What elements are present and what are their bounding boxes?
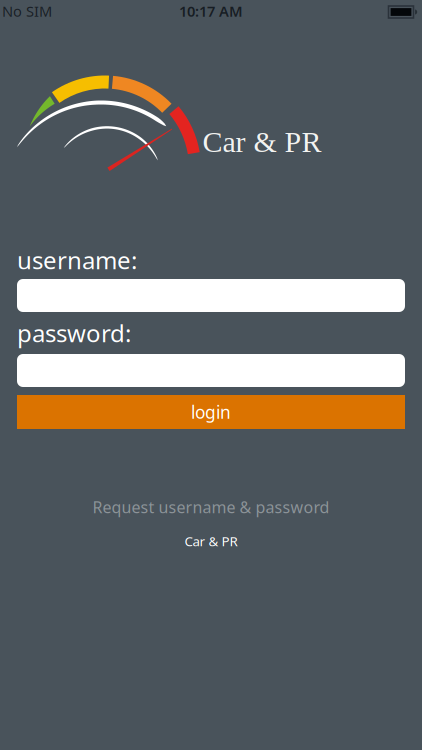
staticText: Car & PR [202, 125, 321, 159]
button[interactable]: password [17, 354, 405, 387]
button[interactable]: login [17, 395, 405, 429]
staticText: Car & PR [184, 532, 237, 550]
staticText: password: [17, 317, 131, 349]
staticText: username: [17, 244, 137, 276]
button[interactable]: username [17, 279, 405, 312]
staticText: Request username & password [92, 496, 329, 518]
staticText: No SIM [2, 1, 52, 21]
button[interactable]: Request username & password [92, 496, 329, 518]
staticText: login [191, 400, 231, 423]
staticText: 10:17 AM [179, 1, 243, 21]
